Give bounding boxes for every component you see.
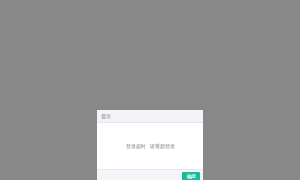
staticText: 确定 — [187, 174, 196, 180]
staticText: 登录超时 — [126, 143, 146, 149]
staticText: 请重新登录 — [150, 143, 175, 149]
staticText: 提示 — [101, 113, 111, 119]
button[interactable]: 确定 — [182, 172, 200, 180]
